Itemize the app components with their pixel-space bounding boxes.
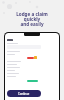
button[interactable]: Continue xyxy=(7,90,41,97)
staticText: Lodge a claim quickly and easily xyxy=(0,11,64,27)
staticText: Continue xyxy=(18,92,30,96)
button[interactable] xyxy=(7,39,13,41)
